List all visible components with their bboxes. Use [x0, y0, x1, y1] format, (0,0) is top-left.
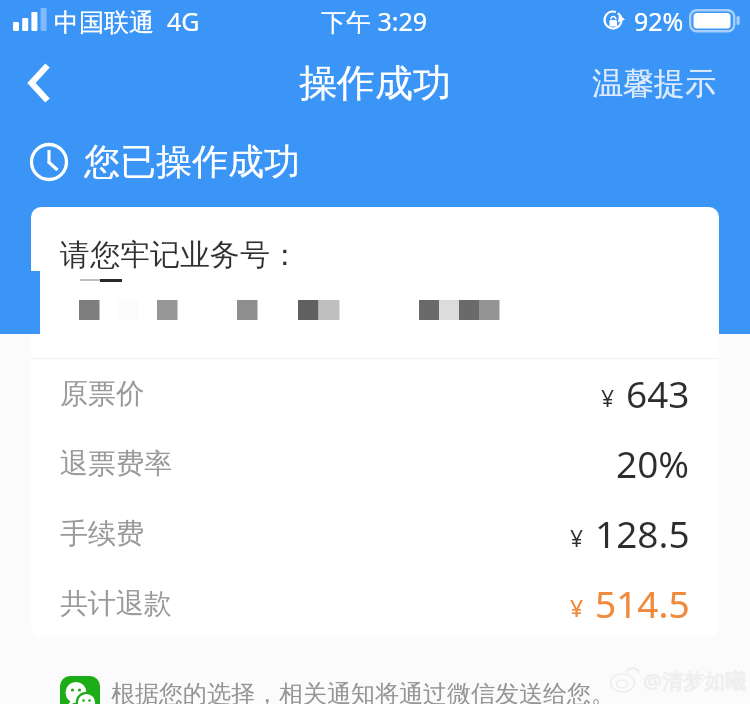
staticText: ¥: [570, 522, 584, 553]
staticText: 514.5: [595, 578, 690, 628]
staticText: 您已操作成功: [84, 139, 300, 184]
staticText: 共计退款: [60, 586, 172, 621]
staticText: 温馨提示: [592, 64, 716, 103]
staticText: 原票价: [60, 376, 144, 411]
staticText: 退票费率: [60, 446, 172, 481]
button[interactable]: 原票价: [31, 358, 719, 428]
staticText: 中国联通 4G: [54, 4, 200, 38]
staticText: 手续费: [60, 516, 144, 551]
staticText: 操作成功: [299, 59, 451, 107]
button[interactable]: 退票费率: [31, 428, 719, 498]
staticText: 下午 3:29: [321, 4, 428, 38]
staticText: 643: [626, 368, 690, 418]
staticText: 92%: [634, 4, 684, 38]
staticText: 根据您的选择，相关通知将通过微信发送给您。: [111, 679, 615, 704]
button[interactable]: 根据您的选择，相关通知将通过微信发送给您。: [60, 676, 615, 704]
staticText: 请您牢记业务号：: [60, 236, 300, 274]
button[interactable]: 温馨提示: [592, 57, 716, 109]
staticText: 20%: [616, 438, 690, 488]
button[interactable]: 共计退款: [31, 568, 719, 637]
button[interactable]: 手续费: [31, 498, 719, 568]
staticText: ¥: [570, 592, 584, 623]
button[interactable]: Back: [8, 57, 72, 109]
staticText: @清梦如曦: [643, 667, 746, 696]
staticText: ¥: [601, 382, 615, 413]
staticText: 128.5: [595, 508, 690, 558]
